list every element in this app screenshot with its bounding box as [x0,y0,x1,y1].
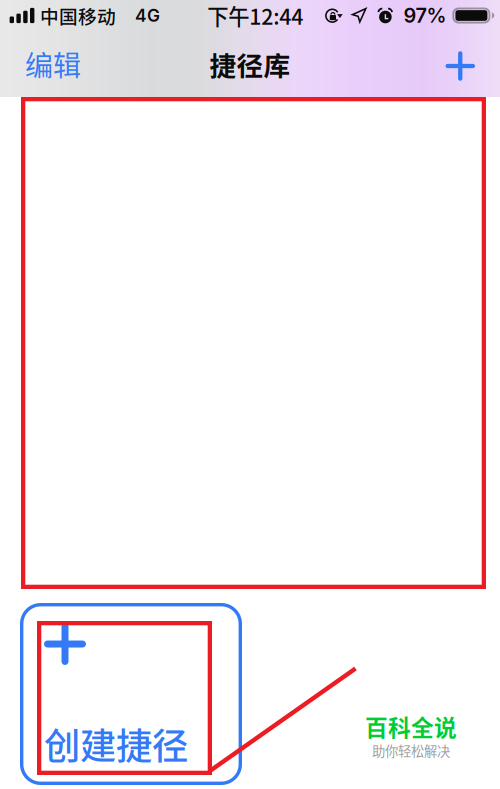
staticText: 创建捷径 [44,717,188,770]
staticText: 4G [135,5,160,26]
staticText: 助你轻松解决 [372,741,450,760]
button[interactable]: 编辑 [16,35,90,93]
button[interactable]: Create shortcut [432,39,488,89]
staticText: 中国移动 [40,2,116,29]
staticText: 97% [403,3,446,28]
button[interactable]: 创建捷径 [20,603,242,785]
staticText: 下午12:44 [207,0,303,31]
staticText: 捷径库 [209,45,290,83]
staticText: 编辑 [25,44,81,84]
staticText: 百科全说 [365,710,457,743]
